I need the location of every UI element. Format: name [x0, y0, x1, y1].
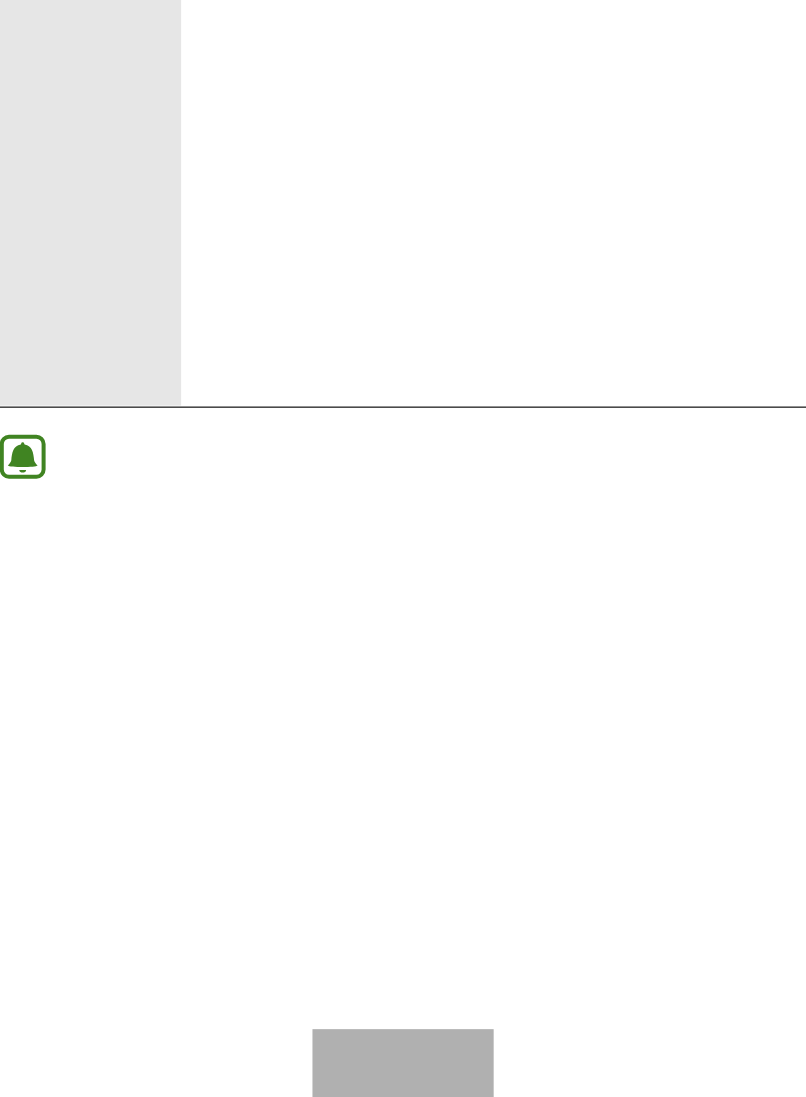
button[interactable]: Bottom panel [310, 1027, 500, 1097]
button[interactable]: Notifications [0, 433, 50, 483]
button[interactable]: Header panel [0, 0, 200, 412]
